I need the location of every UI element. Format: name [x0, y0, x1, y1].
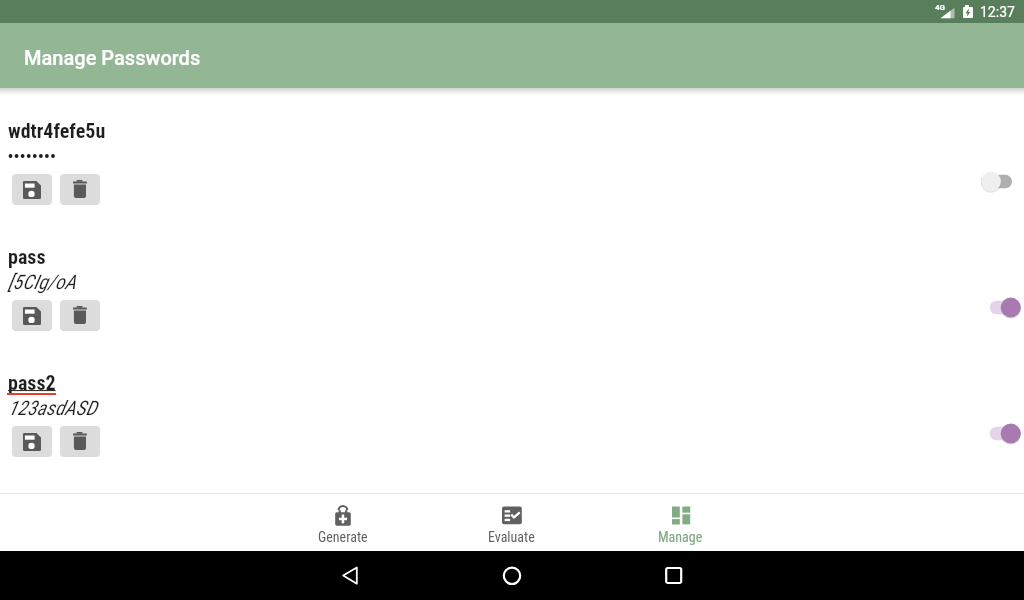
staticText: Evaluate — [488, 529, 535, 545]
button[interactable] — [12, 300, 52, 331]
button[interactable] — [12, 426, 52, 457]
staticText: pass2 — [8, 371, 56, 394]
button[interactable] — [60, 300, 100, 331]
button[interactable] — [976, 291, 1024, 323]
button[interactable] — [12, 174, 52, 205]
button[interactable] — [342, 566, 359, 586]
button[interactable]: Evaluate — [427, 494, 596, 551]
staticText: 4G — [935, 3, 946, 12]
staticText: wdtr4fefe5u — [8, 119, 106, 142]
staticText: Manage Passwords — [24, 46, 201, 69]
button[interactable]: Manage — [596, 494, 765, 551]
staticText: Manage — [658, 529, 703, 545]
button[interactable] — [665, 567, 683, 585]
button[interactable] — [60, 426, 100, 457]
button[interactable] — [976, 165, 1024, 197]
button[interactable] — [60, 174, 100, 205]
button[interactable] — [502, 566, 522, 586]
staticText: Generate — [318, 529, 368, 545]
staticText: 123asdASD — [8, 396, 97, 419]
staticText: pass — [8, 245, 46, 268]
staticText: [5CIg/oA — [8, 270, 76, 293]
staticText: 12:37 — [980, 4, 1015, 20]
button[interactable] — [976, 417, 1024, 449]
button[interactable]: Generate — [258, 494, 427, 551]
